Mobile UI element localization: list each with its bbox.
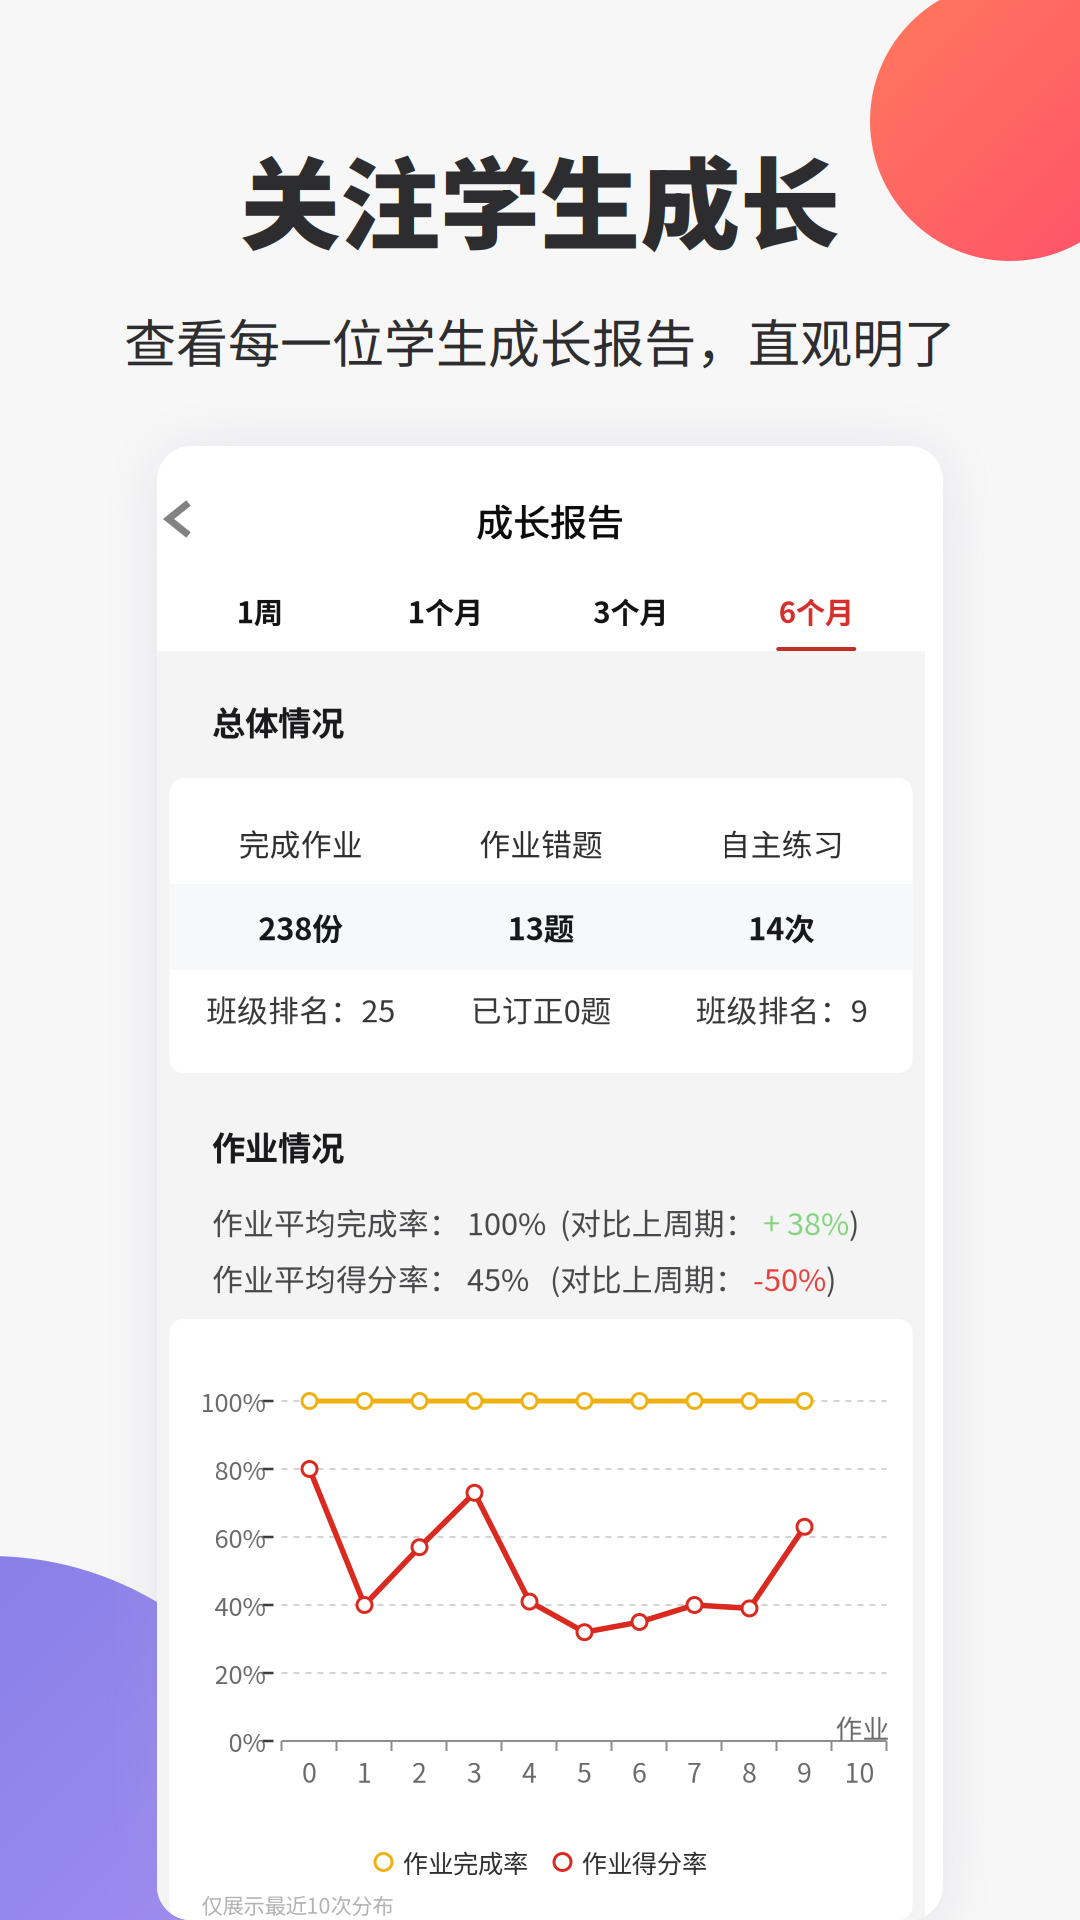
button[interactable]: 1周 (167, 558, 352, 651)
staticText: 14次 (748, 905, 815, 949)
staticText: 作业平均得分率： 45% (对比上周期： (212, 1256, 753, 1300)
staticText: 238份 (258, 905, 343, 949)
staticText: 40% (214, 1587, 265, 1623)
staticText: 80% (214, 1451, 265, 1487)
staticText: -50% (753, 1256, 826, 1300)
staticText: 1 (357, 1752, 372, 1790)
staticText: 0% (228, 1723, 265, 1759)
staticText: + 38% (763, 1200, 849, 1244)
staticText: 2 (412, 1752, 427, 1790)
staticText: 已订正0题 (471, 987, 612, 1031)
staticText: 作业完成率 (403, 1844, 528, 1880)
staticText: 4 (522, 1752, 537, 1790)
button[interactable]: 6个月 (723, 558, 909, 651)
staticText: 关注学生成长 (240, 126, 840, 270)
staticText: 作业情况 (212, 1122, 344, 1170)
staticText: ) (826, 1256, 836, 1300)
button[interactable]: 1个月 (352, 558, 538, 651)
staticText: 完成作业 (239, 821, 363, 865)
staticText: 5 (577, 1752, 592, 1790)
button[interactable]: 3个月 (538, 558, 723, 651)
staticText: 1个月 (408, 589, 483, 632)
staticText: 自主练习 (720, 821, 844, 865)
staticText: 6 (632, 1752, 647, 1790)
staticText: 作业得分率 (582, 1844, 707, 1880)
staticText: 总体情况 (212, 697, 344, 745)
staticText: 作业平均完成率： 100% (对比上周期： (212, 1200, 763, 1244)
staticText: 8 (742, 1752, 757, 1790)
staticText: 10 (844, 1752, 874, 1790)
staticText: 20% (214, 1655, 265, 1691)
staticText: 成长报告 (476, 493, 624, 547)
staticText: 13题 (508, 905, 575, 949)
staticText: 班级排名：25 (206, 987, 395, 1031)
staticText: 1周 (237, 589, 283, 632)
staticText: 作业错题 (479, 821, 603, 865)
staticText: 9 (797, 1752, 812, 1790)
staticText: 查看每一位学生成长报告，直观明了 (124, 302, 956, 378)
button[interactable]: 返回 (157, 456, 218, 547)
staticText: 作业 (835, 1708, 889, 1746)
staticText: 0 (302, 1752, 317, 1790)
staticText: 班级排名：9 (696, 987, 868, 1031)
staticText: 6个月 (779, 589, 854, 632)
staticText: 3个月 (593, 589, 668, 632)
staticText: 100% (200, 1383, 265, 1419)
staticText: 60% (214, 1519, 265, 1555)
staticText: 7 (687, 1752, 702, 1790)
staticText: 仅展示最近10次分布 (201, 1889, 393, 1920)
staticText: 3 (467, 1752, 482, 1790)
staticText: ) (849, 1200, 859, 1244)
